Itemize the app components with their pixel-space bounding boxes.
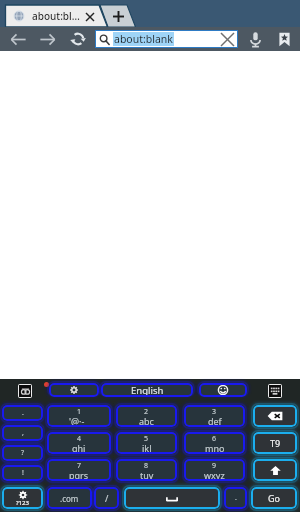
staticText: 4 <box>77 434 82 444</box>
button[interactable]: Voice search <box>243 27 267 51</box>
staticText: Go <box>268 492 280 504</box>
button[interactable]: Forward <box>33 27 61 51</box>
staticText: 2 <box>144 407 149 417</box>
staticText: .com <box>60 493 79 504</box>
staticText: / <box>105 492 109 504</box>
button[interactable]: 6 <box>184 432 245 454</box>
staticText: 8 <box>144 461 149 471</box>
staticText: about:blank <box>114 32 173 46</box>
staticText: about:bl… <box>32 9 80 23</box>
button[interactable]: .com <box>47 487 92 509</box>
button[interactable]: / <box>94 487 119 509</box>
staticText: 5 <box>144 434 149 444</box>
button[interactable]: about:bl… <box>5 5 101 27</box>
button[interactable]: 9 <box>184 459 245 481</box>
button[interactable]: New tab <box>104 5 132 27</box>
button[interactable]: English <box>101 383 193 397</box>
staticText: mno <box>205 442 225 454</box>
button[interactable]: Back <box>4 27 32 51</box>
button[interactable]: Symbols <box>2 487 43 509</box>
button[interactable]: Input method <box>18 384 32 398</box>
button[interactable]: Clear <box>217 27 238 51</box>
staticText: . <box>235 493 237 503</box>
staticText: . <box>22 408 24 418</box>
button[interactable]: Shift <box>253 459 297 481</box>
button[interactable]: ? <box>2 445 43 461</box>
staticText: 3 <box>212 407 217 417</box>
button[interactable]: Settings <box>49 383 99 397</box>
button[interactable]: . <box>224 487 247 509</box>
button[interactable]: Reload <box>64 27 92 51</box>
button[interactable]: ! <box>2 465 43 481</box>
button[interactable]: Backspace <box>253 405 297 427</box>
staticText: 6 <box>212 434 217 444</box>
staticText: wxyz <box>204 469 225 481</box>
button[interactable]: about:blank <box>95 30 238 48</box>
staticText: 1 <box>77 407 82 417</box>
staticText: ! <box>22 468 24 478</box>
button[interactable]: Bookmark <box>272 27 296 51</box>
staticText: '@·-_ <box>69 415 89 427</box>
staticText: abc <box>139 415 154 427</box>
button[interactable]: Go <box>251 487 297 509</box>
staticText: tuv <box>140 469 154 481</box>
button[interactable]: T9 <box>253 432 297 454</box>
button[interactable]: 3 <box>184 405 245 427</box>
button[interactable]: Space <box>124 487 220 509</box>
staticText: T9 <box>270 437 281 449</box>
button[interactable]: 2 <box>116 405 177 427</box>
button[interactable]: , <box>2 425 43 441</box>
staticText: 7 <box>77 461 82 471</box>
staticText: def <box>208 415 222 427</box>
button[interactable]: . <box>2 405 43 421</box>
staticText: pqrs <box>69 469 89 481</box>
staticText: English <box>131 384 164 397</box>
button[interactable]: 1 <box>47 405 111 427</box>
staticText: 9 <box>212 461 217 471</box>
button[interactable]: Keyboard <box>268 384 282 398</box>
staticText: , <box>22 428 24 438</box>
button[interactable]: 4 <box>47 432 111 454</box>
staticText: jkl <box>142 442 152 454</box>
button[interactable]: Emoji <box>199 383 247 397</box>
button[interactable]: 8 <box>116 459 177 481</box>
staticText: ? <box>21 448 25 458</box>
staticText: ?123 <box>16 499 29 507</box>
button[interactable]: 5 <box>116 432 177 454</box>
button[interactable]: Close tab <box>82 9 97 24</box>
button[interactable]: 7 <box>47 459 111 481</box>
staticText: ghi <box>72 442 86 454</box>
